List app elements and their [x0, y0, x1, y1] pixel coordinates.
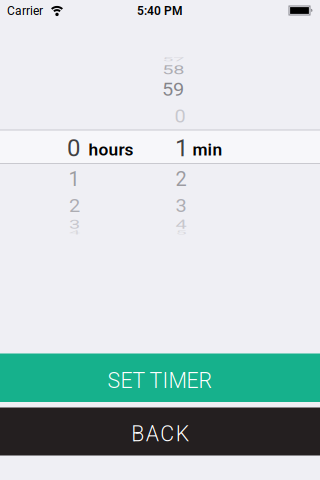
staticText: 1: [175, 134, 188, 162]
staticText: 57: [162, 48, 184, 71]
staticText: 5: [175, 222, 186, 244]
staticText: 0: [174, 105, 185, 128]
staticText: 5:40 PM: [137, 4, 183, 18]
button[interactable]: BACK: [0, 407, 320, 455]
staticText: 0: [67, 134, 80, 162]
staticText: 3: [69, 213, 80, 236]
staticText: SET TIMER: [107, 369, 212, 393]
staticText: 4: [69, 222, 80, 244]
staticText: min: [192, 140, 222, 159]
button[interactable]: SET TIMER: [0, 353, 320, 402]
staticText: 4: [175, 213, 186, 236]
staticText: 58: [162, 59, 184, 81]
staticText: Carrier: [7, 4, 43, 18]
staticText: hours: [88, 140, 133, 159]
staticText: 3: [175, 195, 186, 217]
staticText: 1: [68, 168, 79, 191]
staticText: 59: [162, 78, 184, 101]
staticText: BACK: [131, 422, 189, 446]
staticText: 2: [175, 168, 186, 191]
staticText: 2: [69, 195, 80, 217]
